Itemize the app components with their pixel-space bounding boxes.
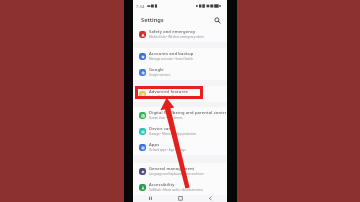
staticText: Advanced features (149, 89, 188, 95)
button[interactable]: Safety and emergency (133, 26, 227, 42)
button[interactable]: Digital Wellbeing and parental controls (133, 107, 227, 123)
button[interactable]: Search (212, 15, 222, 25)
staticText: Language and keyboard • Date and time (149, 172, 204, 176)
staticText: Accounts and backup (149, 51, 194, 57)
button[interactable]: General management (133, 163, 227, 179)
staticText: Medical info • Wireless emergency alerts (149, 35, 204, 39)
staticText: Apps (149, 142, 160, 148)
button[interactable]: Google (133, 64, 227, 80)
staticText: Google services (149, 73, 171, 77)
staticText: Default apps • App settings (149, 148, 186, 152)
button[interactable]: Home (173, 195, 187, 202)
staticText: TalkBack • Mono audio • Assistant menu (149, 188, 204, 192)
button[interactable]: Accounts and backup (133, 48, 227, 64)
staticText: Labs • Side key • Bixby (149, 95, 179, 99)
button[interactable]: Accessibility (133, 179, 227, 195)
staticText: Manage accounts • Smart Switch (149, 57, 194, 61)
staticText: Screen time • App timers (149, 116, 183, 120)
staticText: Storage • Memory • App protection (149, 132, 197, 136)
staticText: Settings (141, 16, 164, 24)
staticText: General management (149, 166, 195, 172)
staticText: Digital Wellbeing and parental controls (149, 110, 226, 116)
staticText: Safety and emergency (149, 29, 196, 35)
staticText: Google (149, 67, 164, 73)
button[interactable]: Advanced features (133, 86, 227, 102)
button[interactable]: Apps (133, 139, 227, 155)
button[interactable]: Recents (143, 195, 157, 202)
button[interactable]: Back (203, 195, 217, 202)
staticText: Device care (149, 126, 173, 132)
button[interactable]: Device care (133, 123, 227, 139)
staticText: 7:34 (136, 4, 145, 9)
staticText: Accessibility (149, 182, 175, 188)
